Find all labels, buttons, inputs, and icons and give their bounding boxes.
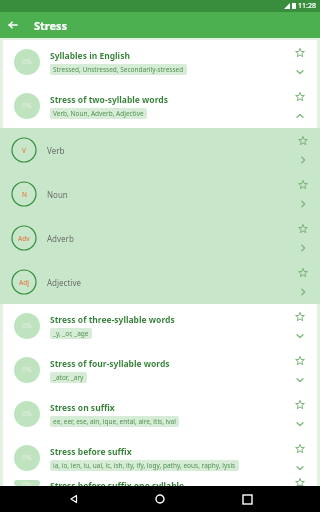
button[interactable]: Adj [0,260,320,304]
button[interactable]: Favorite [292,309,308,325]
button[interactable]: Recents [234,486,260,512]
button[interactable]: Favorite [292,45,308,61]
staticText: Adj [19,278,29,287]
staticText: V [22,146,26,155]
staticText: Adverb [47,233,290,244]
button[interactable]: Collapse [292,108,308,124]
button[interactable]: V [0,128,320,172]
staticText: _ator, _ary [53,373,84,382]
button[interactable]: Expand [292,416,308,432]
staticText: 0% [22,321,32,331]
staticText: 0% [22,57,32,67]
button[interactable]: Favorite [292,353,308,369]
button[interactable]: Back [61,486,87,512]
button[interactable]: Favorite [295,221,311,237]
staticText: Stress before suffix [50,446,132,458]
button[interactable]: Back [0,12,26,38]
staticText: Stress before suffix one syllable [50,480,185,486]
button[interactable]: Favorite [292,480,308,486]
button[interactable]: Home [147,486,173,512]
button[interactable]: Open [295,240,311,256]
staticText: ia, io, ien, iu, ual, ic, ish, ity, ify,… [53,461,236,470]
staticText: Verb, Noun, Adverb, Adjective [53,109,144,118]
staticText: Stress of two-syllable words [50,94,168,106]
staticText: Stress of four-syllable words [50,358,170,370]
staticText: Stress on suffix [50,402,115,414]
button[interactable]: Open [295,284,311,300]
button[interactable]: Expand [292,372,308,388]
button[interactable]: 0% [3,436,317,480]
button[interactable]: 0% [3,392,317,436]
staticText: ee, eer, ese, ain, ique, ental, aire, it… [53,417,176,426]
button[interactable]: 0% [3,304,317,348]
button[interactable]: Favorite [295,265,311,281]
staticText: Noun [47,189,290,200]
button[interactable]: 0% [3,348,317,392]
staticText: Verb [47,145,290,156]
button[interactable]: Favorite [295,177,311,193]
staticText: 0% [22,453,32,463]
button[interactable]: Favorite [295,133,311,149]
staticText: Syllables in English [50,50,130,62]
button[interactable]: Favorite [292,441,308,457]
button[interactable]: Open [295,196,311,212]
button[interactable]: Expand [292,328,308,344]
button[interactable]: Adv [0,216,320,260]
button[interactable]: N [0,172,320,216]
staticText: 0% [22,409,32,419]
button[interactable]: Expand [292,64,308,80]
staticText: 11:28 [298,1,316,11]
staticText: 0% [22,101,32,111]
button[interactable]: Favorite [292,89,308,105]
staticText: 0% [22,480,32,486]
staticText: 0% [22,365,32,375]
staticText: Adv [18,234,30,243]
button[interactable]: 0% [3,40,317,84]
staticText: Stress of three-syllable words [50,314,175,326]
button[interactable]: 0% [3,84,317,128]
button[interactable]: Open [295,152,311,168]
staticText: _y, _or, _age [53,329,89,338]
staticText: N [22,190,27,199]
staticText: Stressed, Unstressed, Secondarily-stress… [53,65,184,74]
button[interactable]: Favorite [292,397,308,413]
staticText: Stress [34,18,68,33]
button[interactable]: Expand [292,460,308,476]
button[interactable]: 0% [3,480,317,486]
staticText: Adjective [47,277,290,288]
